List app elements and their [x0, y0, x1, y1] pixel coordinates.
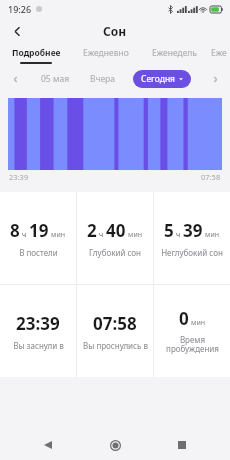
staticText: 07:58 [93, 312, 137, 335]
staticText: 0 [179, 307, 189, 330]
staticText: Время пробуждения [166, 334, 219, 355]
staticText: Сегодня [141, 73, 176, 85]
button[interactable]: Еже [208, 44, 230, 66]
button[interactable]: 05 мая [38, 73, 73, 85]
button[interactable]: Previous day [6, 70, 24, 88]
staticText: Подробнее [12, 47, 61, 59]
button[interactable]: Back [36, 433, 60, 457]
staticText: Еже [211, 47, 227, 59]
staticText: 07:58 [201, 172, 221, 182]
button[interactable]: 8 [0, 192, 76, 284]
staticText: Неглубокий сон [161, 247, 223, 258]
button[interactable]: Back [4, 18, 30, 44]
button[interactable]: 23:39 [0, 285, 76, 377]
button[interactable]: 0 [154, 285, 230, 377]
button[interactable]: 5 [154, 192, 230, 284]
staticText: 2 [87, 219, 97, 242]
button[interactable]: Еженедель [140, 44, 208, 66]
staticText: Глубокий сон [89, 247, 141, 258]
staticText: 8 [10, 219, 20, 242]
button[interactable]: Home [103, 433, 127, 457]
button[interactable]: Recents [170, 433, 194, 457]
staticText: 5 [164, 219, 174, 242]
staticText: 23:39 [16, 312, 60, 335]
staticText: В постели [19, 247, 58, 258]
button[interactable]: 07:58 [77, 285, 153, 377]
staticText: 19:26 [8, 3, 32, 15]
staticText: 23:39 [9, 172, 29, 182]
staticText: ч [99, 230, 104, 240]
staticText: Сон [103, 23, 127, 39]
staticText: 05 мая [41, 73, 70, 85]
staticText: мин [51, 230, 66, 240]
staticText: Вы проснулись в [83, 340, 148, 351]
button[interactable]: Подробнее [0, 44, 72, 66]
button[interactable]: Sleep stages chart [8, 98, 222, 170]
staticText: 39 [183, 219, 203, 242]
staticText: ч [176, 230, 181, 240]
staticText: Вчера [90, 73, 115, 85]
staticText: Ежедневно [83, 47, 129, 59]
staticText: Еженедель [152, 47, 197, 59]
button[interactable]: Ежедневно [72, 44, 140, 66]
staticText: мин [205, 230, 220, 240]
button[interactable]: Сегодня [133, 70, 191, 88]
staticText: мин [191, 318, 206, 328]
staticText: Вы заснули в [13, 340, 64, 351]
staticText: ч [22, 230, 27, 240]
staticText: 19 [29, 219, 49, 242]
staticText: 40 [106, 219, 126, 242]
button[interactable]: Вчера [87, 73, 118, 85]
staticText: мин [128, 230, 143, 240]
button[interactable]: 2 [77, 192, 153, 284]
button[interactable]: Next day [206, 70, 224, 88]
